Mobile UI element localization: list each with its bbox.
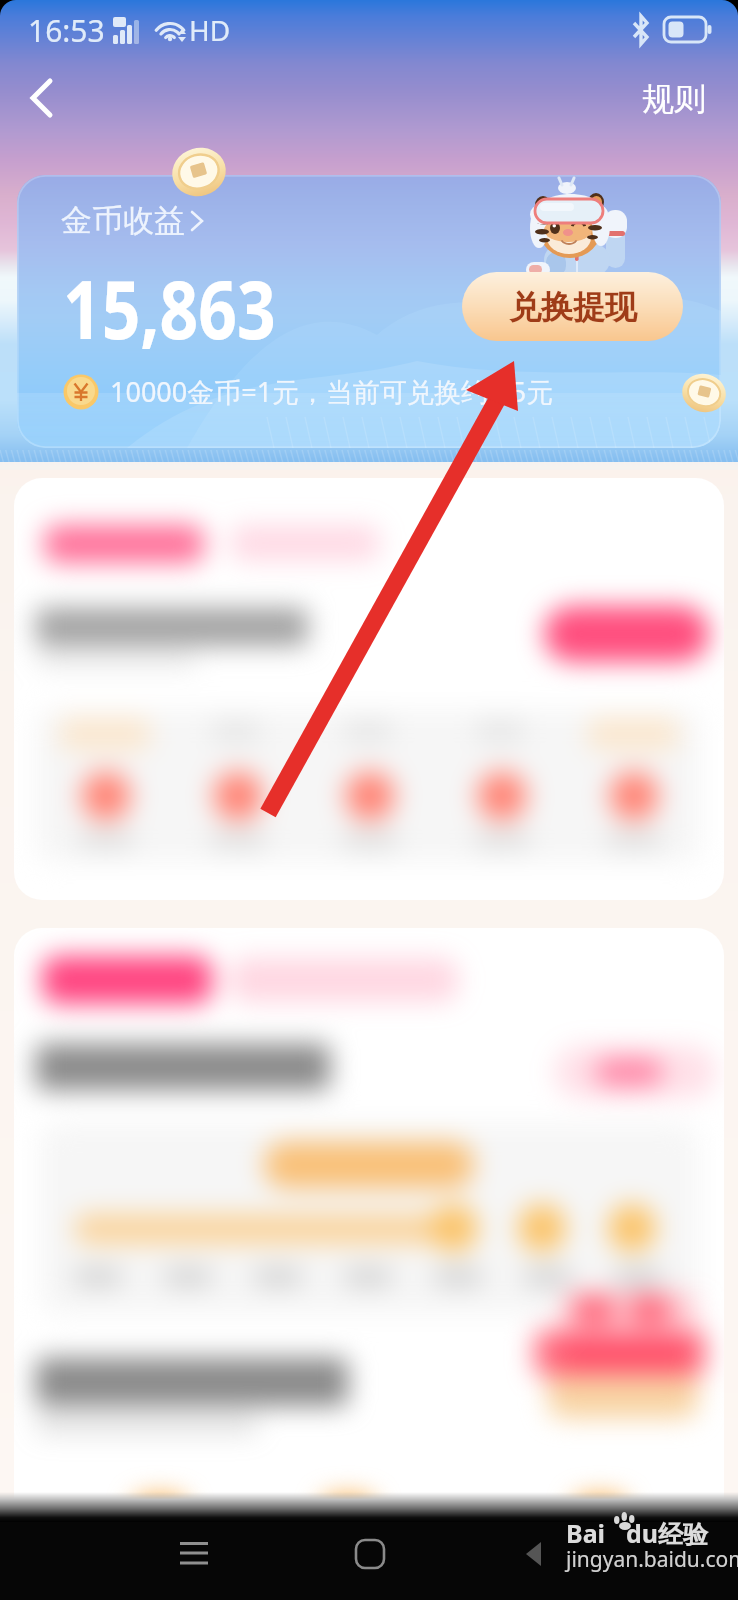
button[interactable]: Back <box>498 1518 570 1590</box>
button[interactable]: Home <box>334 1518 406 1590</box>
staticText: HD <box>189 11 231 49</box>
staticText: 规则 <box>642 79 706 119</box>
staticText: 16:53 <box>28 10 105 51</box>
button[interactable]: Back <box>8 63 80 135</box>
staticText: du经验 <box>626 1516 709 1550</box>
button[interactable]: 兑换提现 <box>462 272 683 341</box>
staticText: jingyan.baidu.com <box>566 1545 738 1574</box>
staticText: 金币收益 <box>61 201 185 240</box>
button[interactable]: Recent apps <box>158 1518 230 1590</box>
button[interactable]: 金币收益 <box>61 201 207 240</box>
staticText: Bai <box>566 1516 606 1550</box>
button[interactable]: 规则 <box>628 71 720 127</box>
staticText: 15,863 <box>63 253 276 362</box>
staticText: 兑换提现 <box>509 287 637 327</box>
staticText: 10000金币=1元，当前可兑换约1.5元 <box>110 373 554 410</box>
